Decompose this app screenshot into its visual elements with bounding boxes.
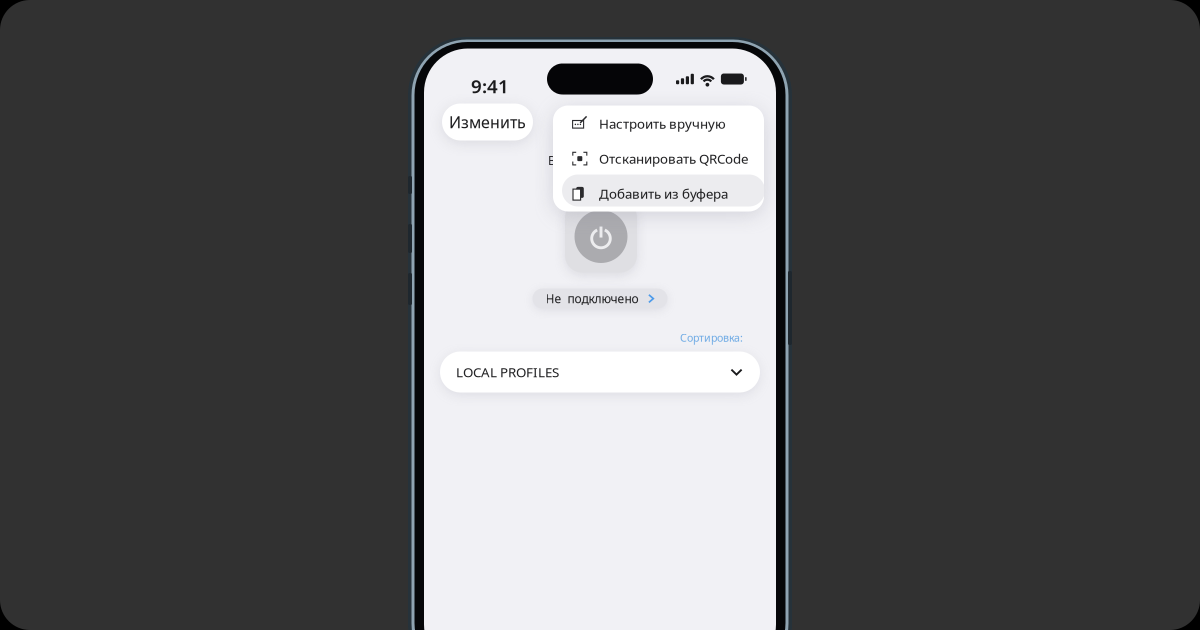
button[interactable]: Добавить из буфера <box>553 176 764 211</box>
button[interactable]: LOCAL PROFILES <box>440 351 760 392</box>
button[interactable]: Не подключено <box>532 288 667 308</box>
staticText: Не подключено <box>545 290 638 306</box>
staticText: Изменить <box>449 111 526 133</box>
button[interactable]: Отсканировать QRCode <box>553 141 764 176</box>
button[interactable]: Сортировка: <box>680 330 743 345</box>
button[interactable]: Power <box>565 200 637 272</box>
staticText: Настроить вручную <box>599 115 726 132</box>
staticText: Добавить из буфера <box>599 185 728 202</box>
staticText: LOCAL PROFILES <box>456 363 559 381</box>
staticText: Отсканировать QRCode <box>599 150 749 167</box>
button[interactable]: Настроить вручную <box>553 106 764 141</box>
button[interactable]: Изменить <box>442 103 533 140</box>
staticText: Сортировка: <box>680 330 743 345</box>
staticText: 9:41 <box>471 73 509 98</box>
staticText: Всего профилей: 0 <box>548 152 655 168</box>
